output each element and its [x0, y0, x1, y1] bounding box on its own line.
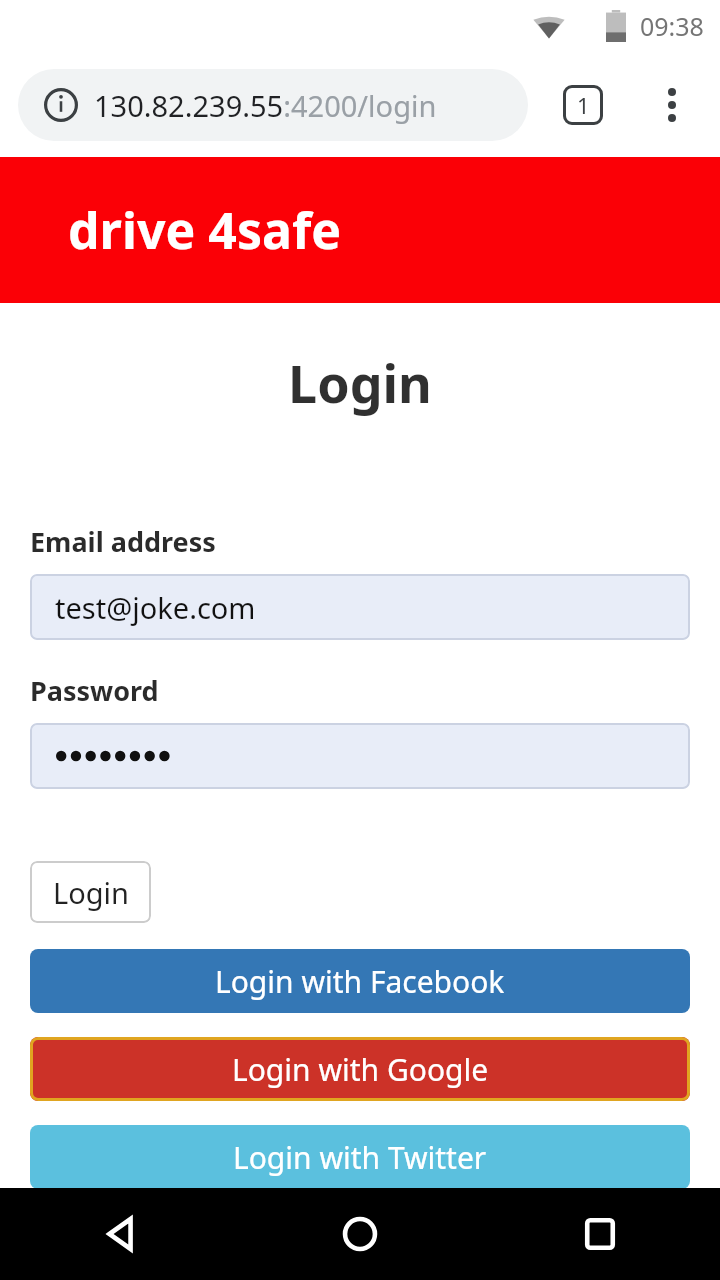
button[interactable]	[30, 723, 690, 789]
staticText: Login with Google	[232, 1049, 489, 1090]
button[interactable]: Login with Twitter	[30, 1125, 690, 1189]
staticText: 1	[577, 90, 590, 120]
button[interactable]: More options	[642, 75, 702, 135]
staticText: Email address	[30, 523, 216, 560]
button[interactable]: Tabs, 1 open	[552, 74, 614, 136]
staticText: test@joke.com	[55, 588, 256, 627]
button[interactable]: Login	[30, 861, 151, 923]
staticText: 130.82.239.55:4200/login	[94, 86, 437, 125]
staticText: Login with Twitter	[233, 1137, 487, 1178]
staticText: Login	[53, 873, 129, 912]
button[interactable]: Home	[240, 1188, 480, 1280]
staticText: Login	[0, 347, 720, 418]
staticText: Password	[30, 672, 159, 709]
button[interactable]: Login with Google	[30, 1037, 690, 1101]
button[interactable]: Login with Facebook	[30, 949, 690, 1013]
staticText: drive 4safe	[68, 196, 342, 264]
button[interactable]: test@joke.com	[30, 574, 690, 640]
staticText: Login with Facebook	[215, 961, 505, 1002]
staticText: 09:38	[640, 9, 704, 43]
button[interactable]: 130.82.239.55:4200/login	[18, 69, 528, 141]
button[interactable]: Recent apps	[480, 1188, 720, 1280]
button[interactable]: Back	[0, 1188, 240, 1280]
